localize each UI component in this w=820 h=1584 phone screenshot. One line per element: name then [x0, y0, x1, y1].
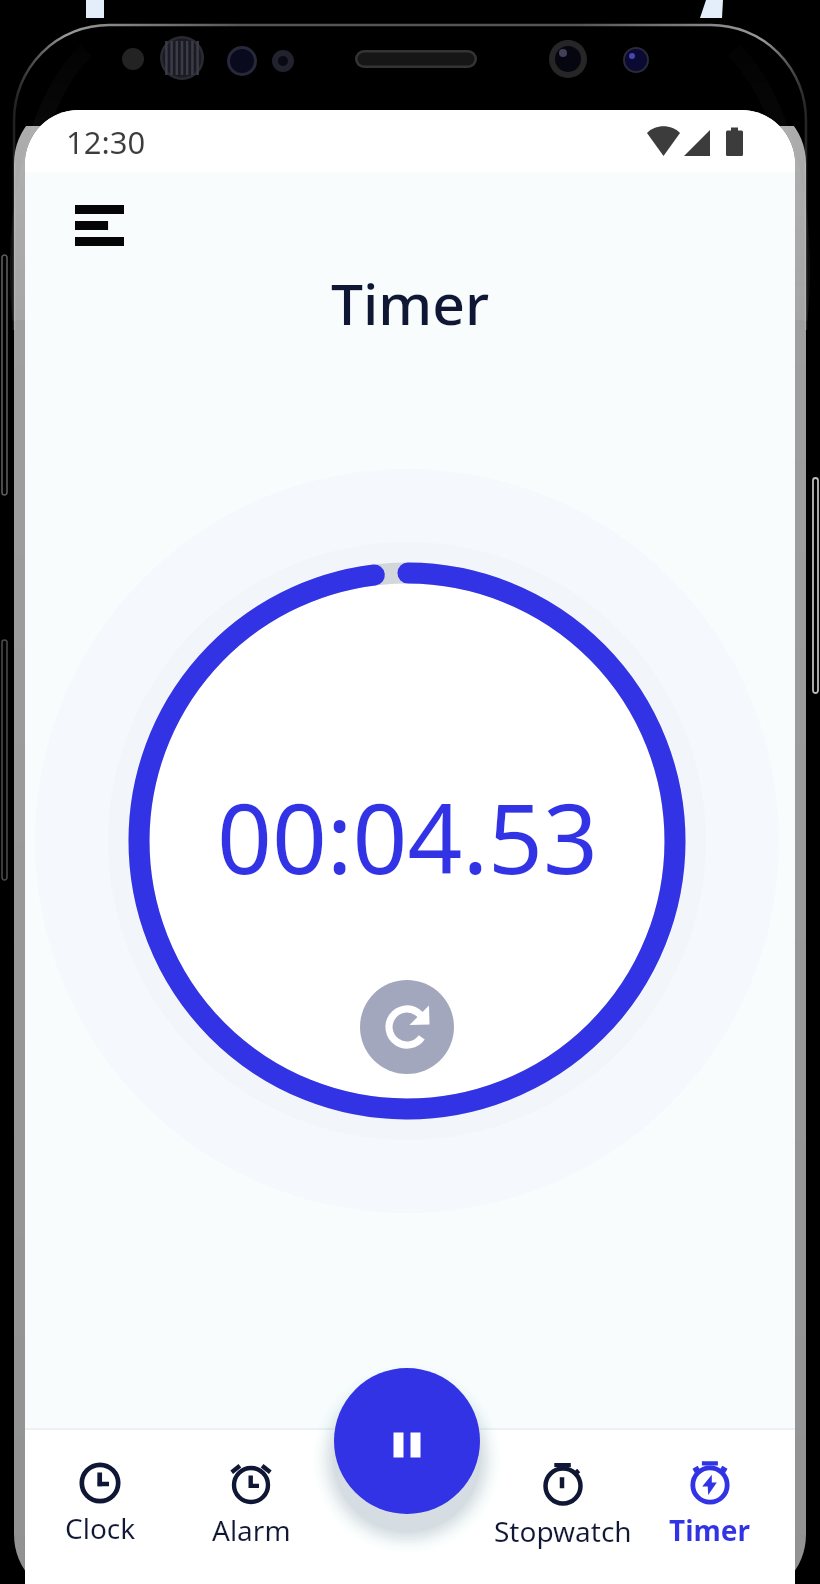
staticText: Clock — [65, 1509, 136, 1547]
staticText: Timer — [25, 264, 795, 342]
button[interactable]: Reset — [360, 980, 454, 1074]
button[interactable]: Menu — [62, 193, 136, 257]
staticText: 00:04.53 — [217, 771, 598, 902]
button[interactable]: Stopwatch — [473, 1438, 653, 1550]
staticText: Alarm — [212, 1511, 291, 1549]
staticText: Timer — [669, 1511, 751, 1549]
staticText: 12:30 — [66, 121, 146, 163]
staticText: Stopwatch — [494, 1512, 632, 1550]
button[interactable]: Clock — [25, 1435, 190, 1547]
button[interactable]: Timer — [620, 1437, 795, 1549]
button[interactable]: Pause — [334, 1368, 480, 1514]
button[interactable]: Alarm — [161, 1437, 341, 1549]
